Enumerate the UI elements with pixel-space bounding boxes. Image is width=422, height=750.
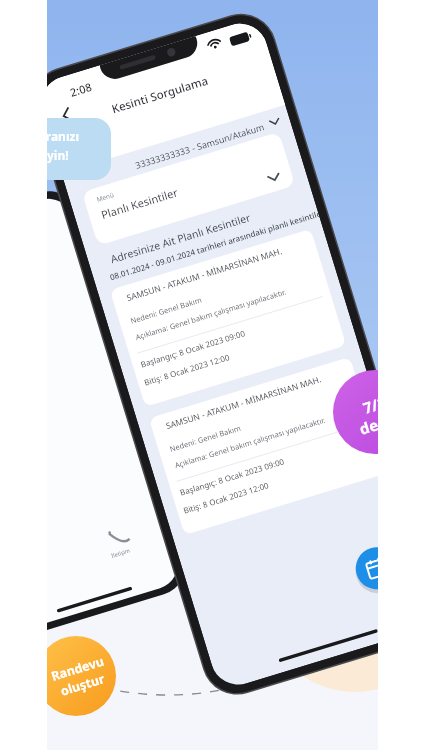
button[interactable]: Kesinti Sorgulama tanitim gorseli bbox=[0, 0, 422, 750]
